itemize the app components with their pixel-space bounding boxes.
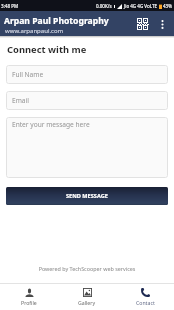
staticText: Contact [136,299,155,306]
button[interactable]: Contact [116,283,174,310]
staticText: Profile [21,299,37,306]
staticText: Gallery [78,299,96,306]
staticText: Enter your message here [12,120,90,129]
staticText: 0.00K/s [96,3,112,9]
button[interactable]: Scan QR code [135,16,151,32]
staticText: SEND MESSAGE [66,192,108,200]
button[interactable]: Gallery [58,283,116,310]
button[interactable]: Full Name [6,65,168,84]
staticText: Jio 4G 4G VoLTE [124,3,157,9]
button[interactable]: Enter your message here [6,117,168,178]
staticText: Full Name [12,70,44,79]
staticText: Email [12,96,29,105]
staticText: Powered by TechScooper web services [0,265,174,272]
button[interactable]: SEND MESSAGE [6,187,168,205]
staticText: www.arpanpaul.com [5,27,64,35]
staticText: 3:48 PM [1,3,19,9]
staticText: Arpan Paul Photography [4,15,109,27]
button[interactable]: More options [155,17,169,31]
staticText: Connect with me [7,43,87,56]
button[interactable]: Email [6,91,168,110]
staticText: 43% [163,3,172,9]
button[interactable]: Profile [0,283,58,310]
